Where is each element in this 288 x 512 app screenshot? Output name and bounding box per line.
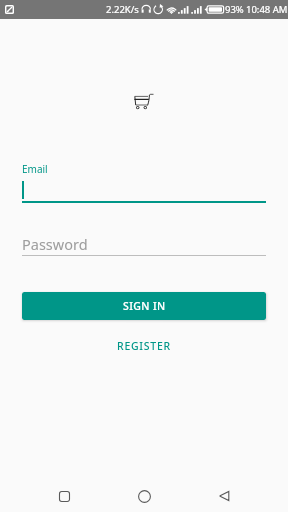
staticText: SIGN IN	[123, 299, 166, 313]
button[interactable]: Email	[22, 160, 266, 203]
button[interactable]: SIGN IN	[22, 292, 266, 320]
button[interactable]: Recents	[40, 476, 88, 512]
button[interactable]: Password	[22, 230, 266, 256]
button[interactable]: Home	[120, 476, 168, 512]
staticText: 2.22K/s	[106, 3, 139, 16]
staticText: Password	[22, 234, 88, 254]
staticText: 93%	[225, 3, 244, 16]
staticText: REGISTER	[117, 339, 171, 353]
staticText: 10:48 AM	[246, 3, 288, 16]
button[interactable]: Back	[200, 476, 248, 512]
staticText: Email	[22, 162, 48, 176]
button[interactable]: REGISTER	[99, 334, 189, 358]
